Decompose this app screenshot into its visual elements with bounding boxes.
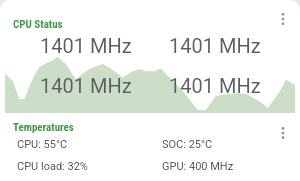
- staticText: Temperatures: [13, 121, 74, 134]
- staticText: 1401 MHz: [40, 34, 132, 57]
- staticText: 1401 MHz: [169, 74, 261, 97]
- staticText: 1401 MHz: [169, 34, 261, 57]
- button[interactable]: More options: [271, 121, 295, 145]
- staticText: CPU Status: [13, 18, 63, 31]
- staticText: CPU: 55°C: [17, 138, 68, 151]
- staticText: GPU: 400 MHz: [162, 160, 234, 173]
- staticText: 1401 MHz: [40, 74, 132, 97]
- button[interactable]: More options: [271, 7, 295, 31]
- staticText: SOC: 25°C: [162, 138, 213, 151]
- staticText: CPU load: 32%: [17, 160, 88, 173]
